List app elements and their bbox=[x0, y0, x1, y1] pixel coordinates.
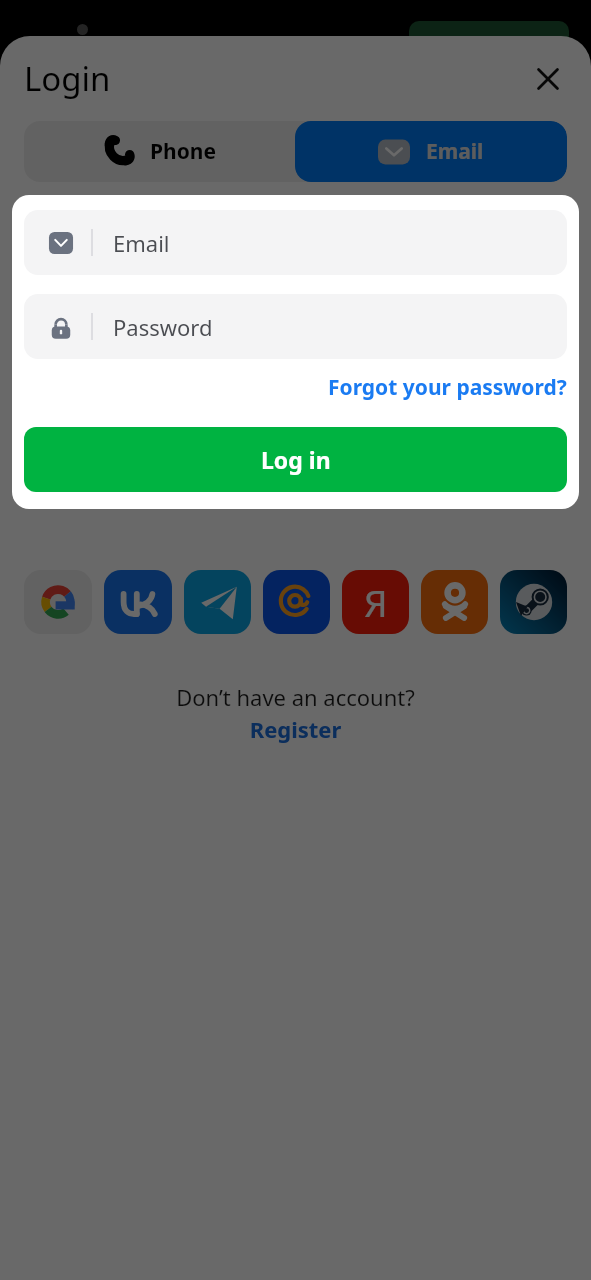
staticText: Log in bbox=[261, 444, 331, 475]
staticText: Don’t have an account? bbox=[0, 682, 591, 712]
staticText: Email bbox=[113, 228, 170, 258]
button[interactable]: Sign in with Mail.ru bbox=[263, 570, 330, 634]
button[interactable]: Log in bbox=[24, 427, 567, 492]
button[interactable]: Password bbox=[24, 294, 567, 359]
button[interactable]: Phone bbox=[24, 121, 295, 182]
staticText: Я bbox=[364, 577, 388, 627]
staticText: Forgot your password? bbox=[328, 373, 567, 402]
staticText: Phone bbox=[150, 137, 217, 166]
button[interactable]: Sign in with Telegram bbox=[184, 570, 251, 634]
staticText: Email bbox=[426, 137, 484, 166]
button[interactable]: Email bbox=[295, 121, 567, 182]
button[interactable]: Register bbox=[0, 714, 591, 744]
button[interactable]: Sign in with Steam bbox=[500, 570, 567, 634]
button[interactable]: Email bbox=[24, 210, 567, 275]
button[interactable]: Forgot your password? bbox=[24, 371, 567, 403]
staticText: Password bbox=[113, 312, 213, 342]
button[interactable]: Sign in with Odnoklassniki bbox=[421, 570, 488, 634]
staticText: Login bbox=[24, 56, 111, 101]
button[interactable]: Sign in with VK bbox=[104, 570, 172, 634]
button[interactable]: Close bbox=[525, 56, 571, 102]
button[interactable]: Sign in with Google bbox=[24, 570, 92, 634]
button[interactable]: Sign in with Yandex bbox=[342, 570, 409, 634]
